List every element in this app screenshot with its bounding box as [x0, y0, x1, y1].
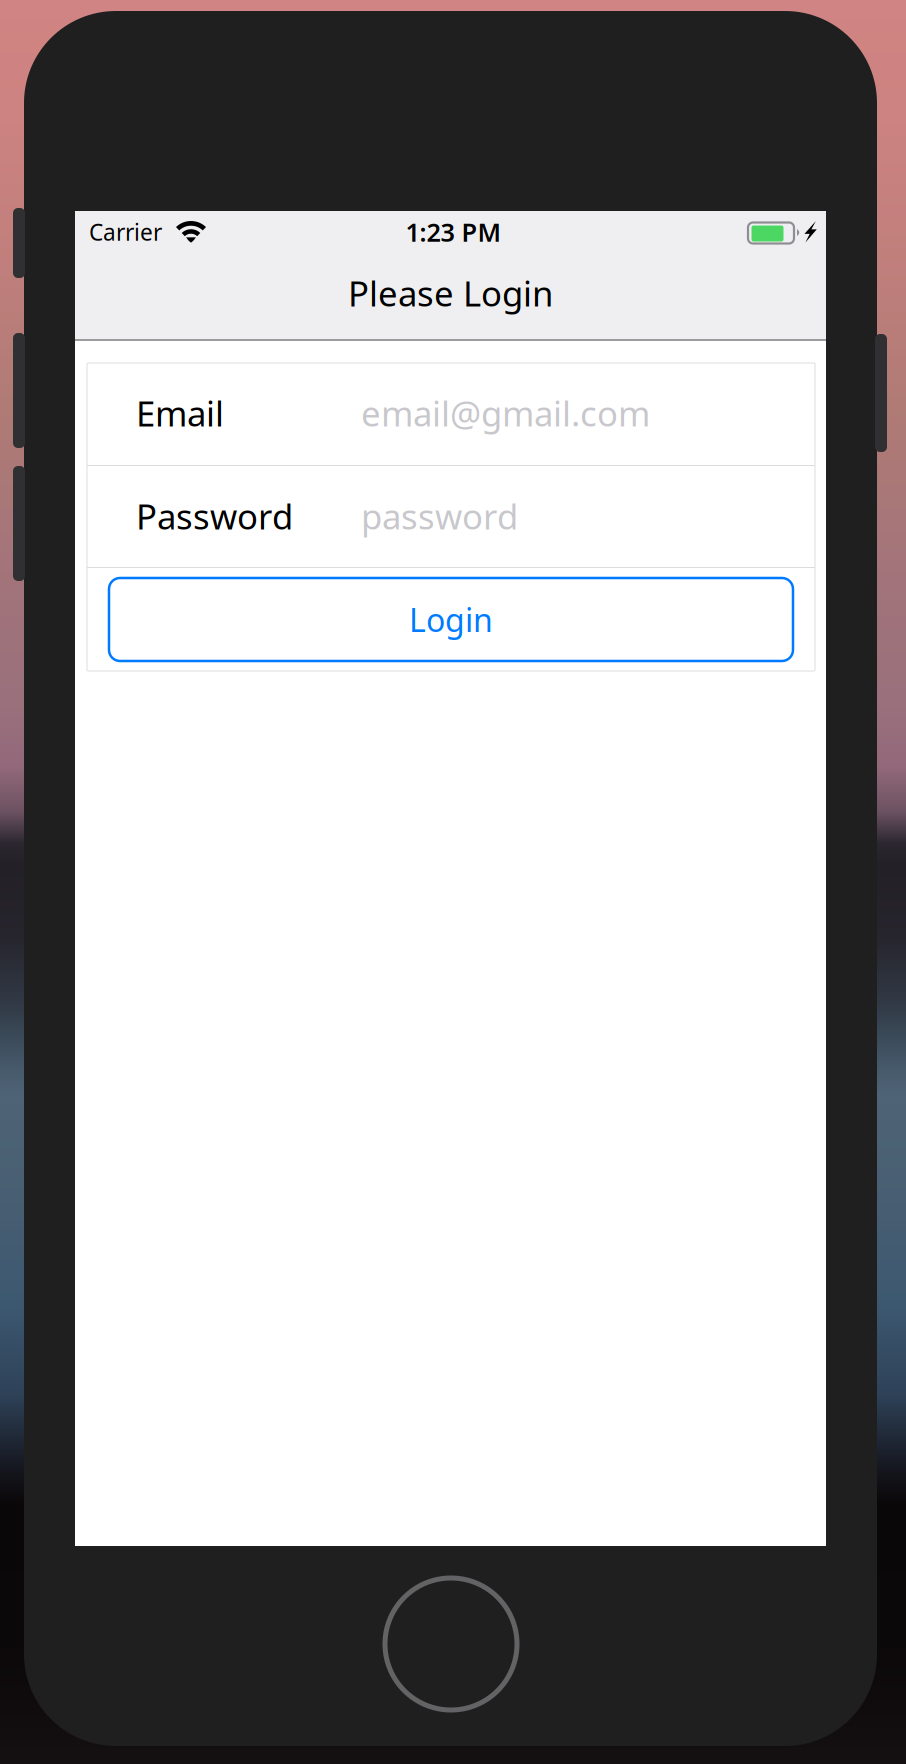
staticText: Please Login — [348, 270, 553, 316]
staticText: password — [361, 493, 518, 539]
staticText: Login — [409, 598, 493, 641]
staticText: 1:23 PM — [405, 215, 501, 249]
staticText: Carrier — [89, 217, 162, 247]
staticText: email@gmail.com — [361, 390, 650, 436]
staticText: Email — [136, 390, 224, 436]
button[interactable]: Login — [87, 568, 815, 671]
staticText: Password — [136, 493, 293, 539]
